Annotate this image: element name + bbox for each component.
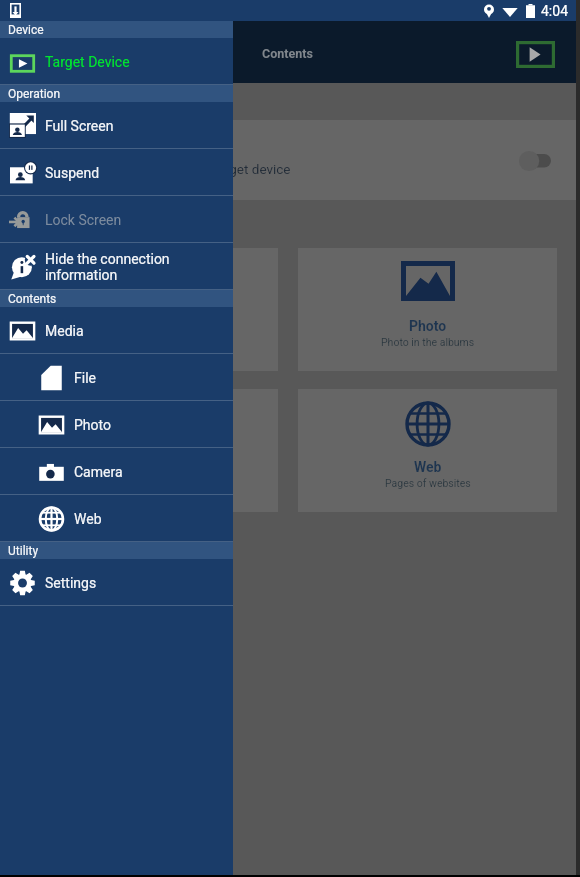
button[interactable]: Target Device: [0, 38, 233, 85]
staticText: Full Screen: [45, 118, 114, 134]
staticText: Photo: [409, 318, 447, 334]
button[interactable]: Full Screen: [0, 102, 233, 149]
button[interactable]: File: [0, 354, 233, 401]
staticText: Connect to the target device: [122, 161, 291, 177]
button[interactable]: Target device: [516, 41, 555, 68]
staticText: Pages of websites: [385, 477, 471, 489]
button[interactable]: Media: [0, 307, 233, 354]
button[interactable]: Settings: [0, 559, 233, 606]
staticText: Web: [414, 459, 442, 475]
staticText: Device: [8, 23, 44, 37]
button[interactable]: Camera: [19, 389, 278, 512]
button[interactable]: Connect toggle: [519, 150, 551, 172]
staticText: Camera: [74, 464, 123, 480]
staticText: 4:04: [541, 3, 568, 19]
staticText: Settings: [45, 575, 97, 591]
button[interactable]: Web: [298, 389, 557, 512]
button[interactable]: Photo: [0, 401, 233, 448]
button[interactable]: Hide the connection information: [0, 243, 233, 290]
staticText: Suspend: [45, 165, 100, 181]
staticText: Target Device: [45, 54, 130, 70]
staticText: Operation: [8, 87, 61, 101]
button[interactable]: Camera: [0, 448, 233, 495]
staticText: Web: [74, 511, 102, 527]
staticText: Hide the connection information: [45, 251, 170, 283]
staticText: Contents: [8, 292, 57, 306]
button[interactable]: Lock Screen: [0, 196, 233, 243]
staticText: File: [74, 370, 96, 386]
button[interactable]: Suspend: [0, 149, 233, 196]
staticText: Utility: [8, 544, 39, 558]
staticText: Lock Screen: [45, 212, 122, 228]
staticText: Photo: [74, 417, 111, 433]
button[interactable]: Photo: [298, 248, 557, 371]
staticText: Photo in the albums: [381, 336, 475, 348]
button[interactable]: Media: [19, 248, 278, 371]
staticText: Contents: [262, 46, 313, 61]
staticText: Media: [45, 323, 84, 339]
button[interactable]: Web: [0, 495, 233, 542]
